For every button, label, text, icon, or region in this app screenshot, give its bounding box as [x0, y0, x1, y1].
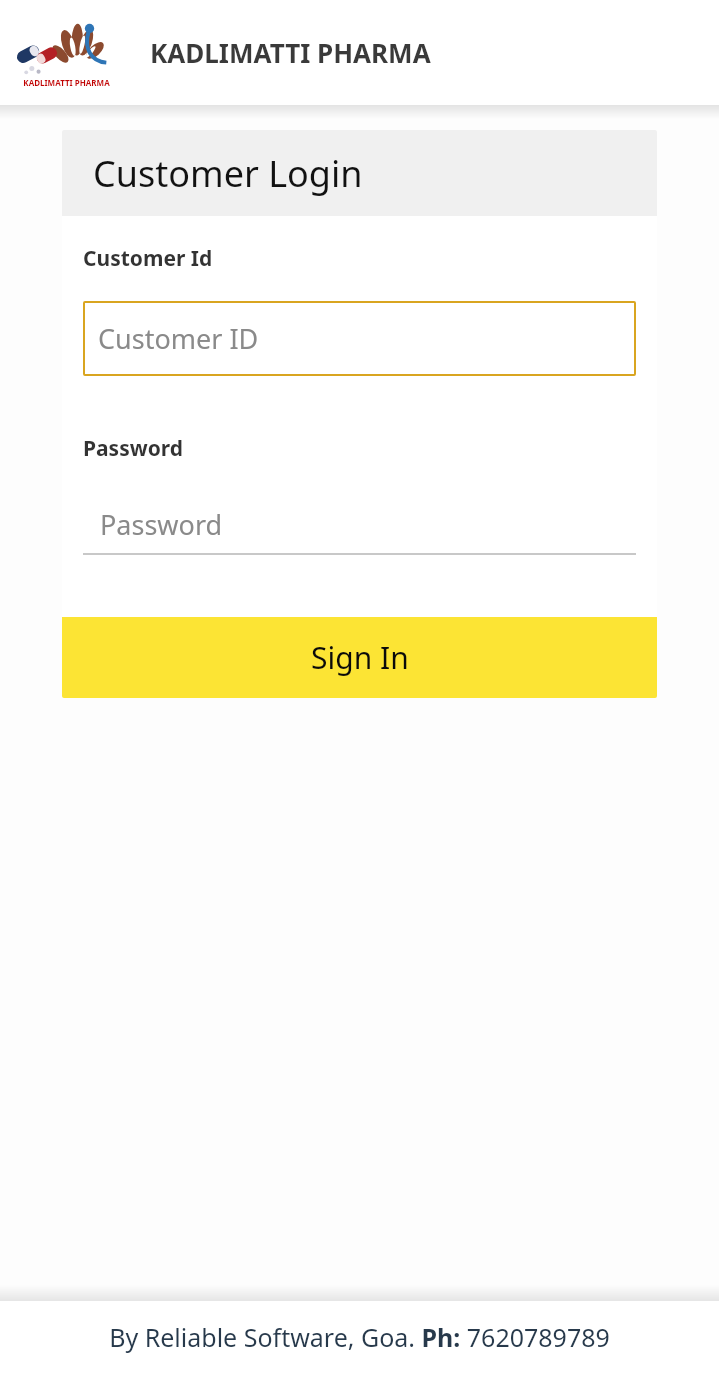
staticText: KADLIMATTI PHARMA — [23, 77, 110, 88]
staticText: Customer Id — [83, 244, 213, 273]
button[interactable]: Customer ID — [83, 301, 636, 376]
staticText: Customer Login — [93, 149, 363, 198]
staticText: Sign In — [311, 637, 409, 678]
staticText: Password — [83, 434, 184, 463]
staticText: Customer ID — [98, 320, 259, 357]
staticText: KADLIMATTI PHARMA — [150, 35, 431, 70]
staticText: Password — [100, 506, 223, 543]
staticText: By Reliable Software, Goa. Ph: 762078978… — [109, 1320, 610, 1354]
button[interactable]: Password — [83, 495, 636, 555]
button[interactable]: Sign In — [62, 617, 657, 698]
